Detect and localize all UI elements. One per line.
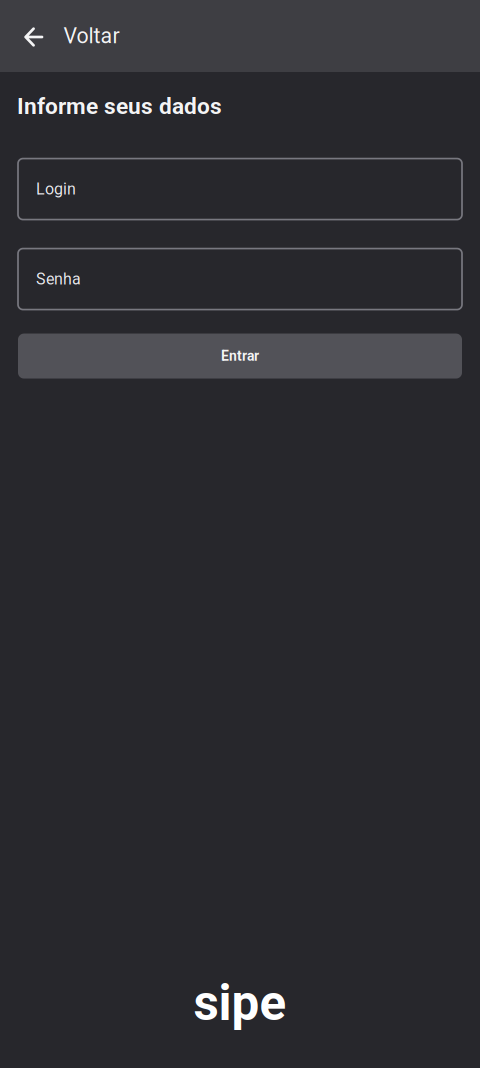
- staticText: sipe: [193, 974, 286, 1032]
- staticText: Voltar: [63, 23, 119, 48]
- button[interactable]: Entrar: [18, 334, 462, 379]
- staticText: Entrar: [221, 348, 259, 364]
- staticText: Informe seus dados: [17, 93, 222, 120]
- button[interactable]: Voltar: [0, 0, 158, 72]
- button[interactable]: Login: [18, 159, 462, 220]
- button[interactable]: Senha: [18, 249, 462, 310]
- staticText: Senha: [36, 270, 81, 288]
- staticText: Login: [36, 180, 76, 198]
